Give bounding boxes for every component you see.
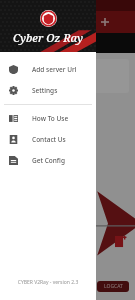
staticText: Get Config — [32, 156, 65, 165]
staticText: CYBER V2Ray - version 2.3 — [0, 279, 96, 286]
staticText: Contact Us — [32, 135, 66, 144]
button[interactable]: Add server — [97, 14, 113, 30]
staticText: Add server Url — [32, 65, 77, 74]
staticText: LOGCAT — [104, 283, 123, 290]
button[interactable]: HOW TO USE — [4, 37, 74, 50]
button[interactable]: Add server Url — [0, 59, 96, 80]
staticText: How To Use — [32, 114, 69, 123]
button[interactable]: How To Use — [0, 108, 96, 129]
button[interactable]: Get Config — [0, 150, 96, 171]
button[interactable]: New config — [114, 235, 127, 248]
staticText: Settings — [32, 86, 58, 95]
button[interactable]: Contact Us — [0, 129, 96, 150]
staticText: Cyber Oz Ray — [13, 30, 83, 45]
button[interactable]: Settings — [0, 80, 96, 101]
button[interactable] — [6, 59, 129, 93]
staticText: HOW TO USE — [20, 40, 58, 48]
button[interactable]: LOGCAT — [97, 281, 129, 292]
